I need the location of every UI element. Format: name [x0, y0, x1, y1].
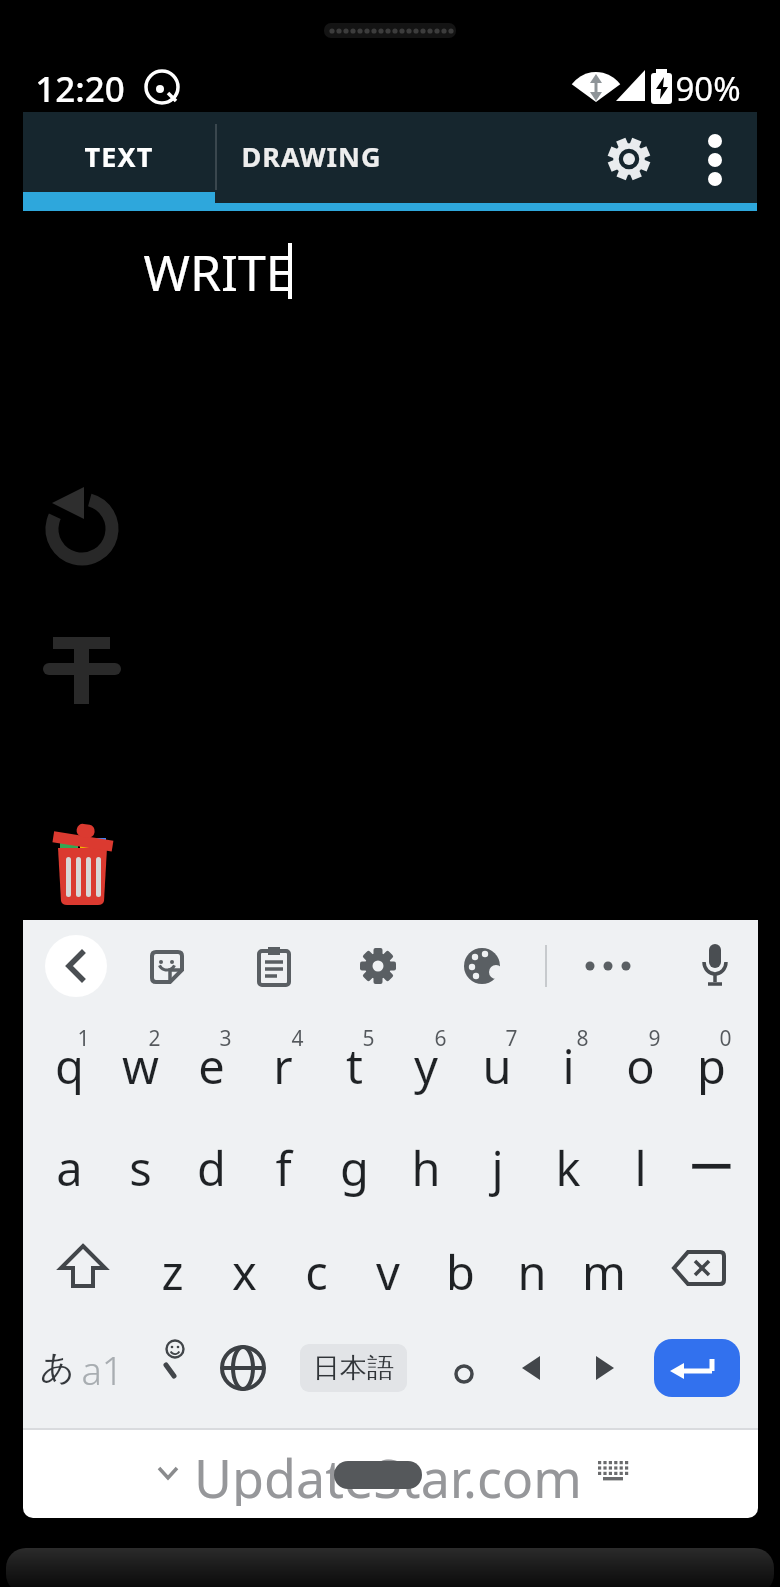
button[interactable]: DRAWING	[234, 116, 389, 196]
button[interactable]: u	[464, 1030, 530, 1102]
staticText: c	[305, 1240, 328, 1304]
button[interactable]: n	[499, 1236, 565, 1308]
button[interactable]: v	[355, 1236, 421, 1308]
button[interactable]: o	[607, 1030, 673, 1102]
button[interactable]	[440, 1344, 488, 1392]
button[interactable]: e	[178, 1030, 244, 1102]
staticText: q	[55, 1034, 84, 1098]
button[interactable]	[44, 485, 124, 565]
button[interactable]	[668, 1246, 728, 1294]
staticText: e	[198, 1034, 225, 1098]
staticText: p	[697, 1034, 726, 1098]
staticText: 3	[219, 1024, 232, 1052]
button[interactable]	[150, 1336, 198, 1400]
staticText: i	[562, 1034, 575, 1098]
staticText: k	[555, 1136, 581, 1200]
button[interactable]: j	[464, 1132, 530, 1204]
staticText: 4	[291, 1024, 304, 1052]
button[interactable]: 日本語	[300, 1344, 407, 1392]
button[interactable]: c	[283, 1236, 349, 1308]
staticText: あ	[40, 1346, 75, 1389]
staticText: d	[197, 1136, 226, 1200]
staticText: 12:20	[35, 65, 125, 109]
button[interactable]: s	[107, 1132, 173, 1204]
button[interactable]	[698, 942, 732, 990]
button[interactable]: あ	[36, 1336, 136, 1400]
button[interactable]: b	[427, 1236, 493, 1308]
button[interactable]: g	[321, 1132, 387, 1204]
staticText: DRAWING	[241, 138, 382, 175]
button[interactable]	[148, 948, 186, 986]
button[interactable]	[580, 950, 636, 982]
button[interactable]: a	[36, 1132, 102, 1204]
button[interactable]: q	[36, 1030, 102, 1102]
staticText: 7	[505, 1024, 518, 1052]
staticText: 90%	[675, 66, 741, 108]
staticText: WRITE	[143, 238, 294, 306]
staticText: 8	[576, 1024, 589, 1052]
button[interactable]	[40, 630, 130, 710]
button[interactable]	[40, 815, 130, 910]
staticText: w	[122, 1034, 159, 1098]
staticText: 日本語	[313, 1351, 394, 1385]
button[interactable]	[218, 1343, 268, 1393]
staticText: 0	[719, 1024, 732, 1052]
button[interactable]	[55, 1242, 111, 1298]
staticText: g	[340, 1136, 369, 1200]
staticText: z	[161, 1240, 184, 1304]
staticText: m	[582, 1240, 626, 1304]
staticText: a	[56, 1136, 83, 1200]
button[interactable]: x	[211, 1236, 277, 1308]
staticText: r	[273, 1034, 293, 1098]
button[interactable]: w	[107, 1030, 173, 1102]
staticText: n	[517, 1240, 547, 1304]
button[interactable]: h	[393, 1132, 459, 1204]
button[interactable]: i	[535, 1030, 601, 1102]
staticText: x	[232, 1240, 257, 1304]
button[interactable]: y	[393, 1030, 459, 1102]
staticText: 1	[77, 1024, 90, 1052]
staticText: l	[634, 1136, 647, 1200]
button[interactable]	[580, 1344, 628, 1392]
button[interactable]	[45, 935, 107, 997]
button[interactable]	[462, 946, 504, 986]
staticText: 2	[148, 1024, 161, 1052]
staticText: 5	[362, 1024, 375, 1052]
staticText: t	[346, 1034, 363, 1098]
button[interactable]	[654, 1339, 740, 1397]
button[interactable]	[358, 946, 398, 986]
button[interactable]: TEXT	[23, 116, 215, 196]
button[interactable]: f	[250, 1132, 316, 1204]
staticText: s	[129, 1136, 152, 1200]
staticText: f	[275, 1136, 292, 1200]
staticText: h	[411, 1136, 441, 1200]
button[interactable]: t	[321, 1030, 387, 1102]
button[interactable]	[255, 946, 293, 988]
button[interactable]: p	[678, 1030, 744, 1102]
button[interactable]: m	[571, 1236, 637, 1308]
staticText: y	[414, 1034, 438, 1098]
staticText: b	[446, 1240, 475, 1304]
staticText: a1	[81, 1344, 124, 1394]
button[interactable]: l	[607, 1132, 673, 1204]
button[interactable]	[597, 127, 661, 191]
staticText: ー	[688, 1139, 735, 1198]
staticText: j	[491, 1136, 504, 1200]
staticText: TEXT	[84, 138, 154, 175]
button[interactable]: k	[535, 1132, 601, 1204]
staticText: 9	[648, 1024, 661, 1052]
button[interactable]: r	[250, 1030, 316, 1102]
staticText: o	[626, 1034, 655, 1098]
button[interactable]: z	[139, 1236, 205, 1308]
button[interactable]	[687, 127, 743, 191]
button[interactable]: d	[178, 1132, 244, 1204]
staticText: 6	[434, 1024, 447, 1052]
staticText: UpdateStar.com	[194, 1442, 582, 1506]
staticText: u	[482, 1034, 512, 1098]
staticText: v	[376, 1240, 400, 1304]
button[interactable]: ー	[678, 1132, 744, 1204]
button[interactable]	[508, 1344, 556, 1392]
